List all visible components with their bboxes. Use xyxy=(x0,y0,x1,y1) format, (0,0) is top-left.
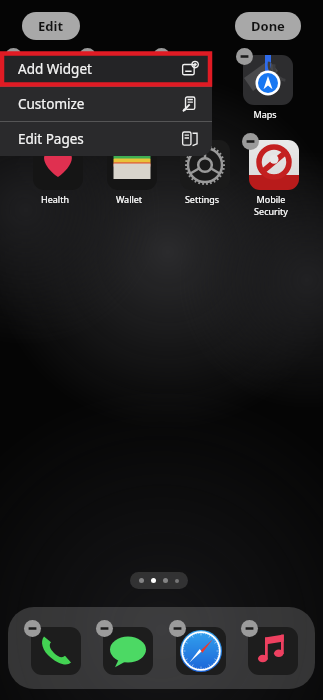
button[interactable]: Done xyxy=(235,12,301,40)
button[interactable]: Add Widget xyxy=(0,52,212,86)
button[interactable]: Safari xyxy=(167,621,229,675)
button[interactable]: Health xyxy=(24,134,86,205)
button[interactable]: App xyxy=(6,49,68,105)
staticText: Done xyxy=(251,17,285,35)
staticText: Health xyxy=(24,193,86,205)
button[interactable]: Phone xyxy=(22,621,84,675)
staticText: Wallet xyxy=(98,193,160,205)
button[interactable]: Customize xyxy=(0,87,212,121)
button[interactable]: Edit Pages xyxy=(0,122,212,156)
staticText: Mobile Security xyxy=(240,193,302,217)
staticText: Edit Pages xyxy=(18,130,84,148)
button[interactable]: Settings xyxy=(171,134,233,205)
staticText: Customize xyxy=(18,95,85,113)
button[interactable]: Music xyxy=(239,621,301,675)
staticText: Edit xyxy=(38,17,64,35)
button[interactable]: Wallet xyxy=(98,134,160,205)
staticText: Add Widget xyxy=(18,60,92,78)
button[interactable]: Messages xyxy=(94,621,156,675)
button[interactable]: App xyxy=(154,49,216,105)
button[interactable]: Mobile Security xyxy=(240,134,302,217)
button[interactable]: Maps xyxy=(234,49,296,120)
button[interactable]: App xyxy=(80,49,142,105)
staticText: Settings xyxy=(171,193,233,205)
button[interactable]: Edit xyxy=(22,12,80,40)
staticText: Maps xyxy=(234,108,296,120)
